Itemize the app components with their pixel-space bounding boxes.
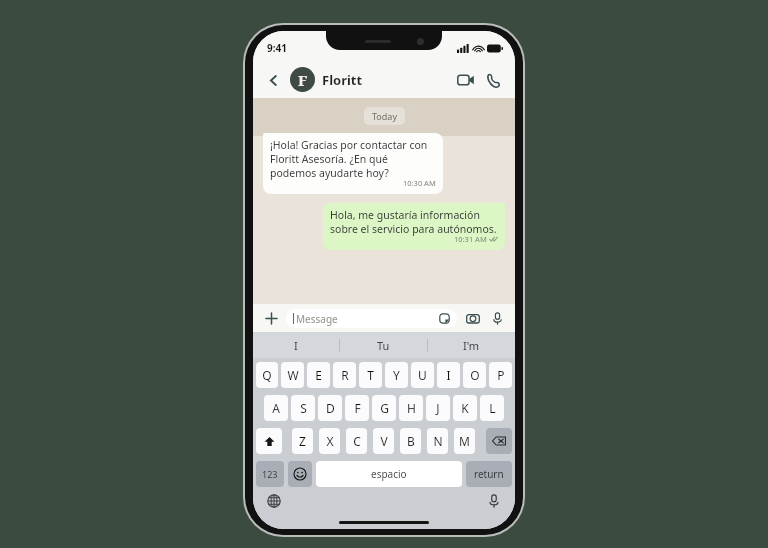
button[interactable]: F (290, 67, 363, 92)
button[interactable]: ¡Hola! Gracias por contactar con Floritt… (263, 133, 443, 194)
button[interactable]: Change keyboard (263, 490, 285, 512)
staticText: J (436, 400, 440, 416)
button[interactable]: Emoji (288, 461, 312, 487)
staticText: Message (296, 312, 338, 326)
button[interactable]: F (345, 395, 369, 421)
staticText: Z (299, 433, 306, 449)
staticText: D (326, 400, 335, 416)
staticText: I'm (463, 338, 480, 353)
button[interactable]: I'm (428, 332, 515, 358)
staticText: 10:31 AM (454, 234, 487, 244)
staticText: F (354, 400, 361, 416)
button[interactable]: I (437, 362, 460, 388)
button[interactable]: Dictation (483, 490, 505, 512)
button[interactable]: Y (385, 362, 408, 388)
staticText: G (380, 400, 389, 416)
button[interactable]: return (466, 461, 512, 487)
button[interactable]: Hola, me gustaría información sobre el s… (323, 203, 505, 250)
staticText: return (474, 467, 504, 481)
button[interactable]: Voice message (487, 308, 507, 328)
staticText: M (459, 433, 470, 449)
staticText: 9:41 (267, 41, 287, 55)
staticText: Y (393, 367, 400, 383)
staticText: H (407, 400, 416, 416)
staticText: I (446, 367, 451, 383)
button[interactable]: R (333, 362, 356, 388)
staticText: F (298, 70, 308, 90)
button[interactable]: espacio (316, 461, 462, 487)
button[interactable]: 123 (256, 461, 284, 487)
button[interactable]: Video call (452, 67, 478, 93)
button[interactable]: W (281, 362, 304, 388)
button[interactable]: I (253, 332, 339, 358)
button[interactable]: T (359, 362, 382, 388)
button[interactable]: P (489, 362, 512, 388)
button[interactable]: L (480, 395, 504, 421)
staticText: X (326, 433, 334, 449)
button[interactable]: A (264, 395, 288, 421)
staticText: Floritt (322, 71, 363, 89)
staticText: I (294, 338, 298, 353)
staticText: A (272, 400, 280, 416)
button[interactable]: Back (262, 69, 284, 91)
button[interactable]: J (426, 395, 450, 421)
button[interactable]: V (373, 428, 394, 454)
staticText: 10:30 AM (403, 178, 436, 188)
button[interactable]: Q (256, 362, 278, 388)
staticText: P (497, 367, 505, 383)
staticText: S (300, 400, 307, 416)
staticText: V (380, 433, 388, 449)
button[interactable]: Tu (340, 332, 427, 358)
button[interactable]: Message (286, 309, 457, 328)
button[interactable]: M (454, 428, 475, 454)
staticText: K (461, 400, 469, 416)
button[interactable]: B (400, 428, 421, 454)
button[interactable]: G (372, 395, 396, 421)
button[interactable]: Backspace (486, 428, 512, 454)
staticText: E (315, 367, 322, 383)
button[interactable]: Voice call (480, 67, 506, 93)
button[interactable]: N (427, 428, 448, 454)
staticText: T (367, 367, 374, 383)
staticText: B (407, 433, 415, 449)
staticText: ¡Hola! Gracias por contactar con Floritt… (270, 138, 436, 180)
button[interactable]: U (411, 362, 434, 388)
staticText: L (489, 400, 496, 416)
button[interactable]: Attach (261, 308, 281, 328)
button[interactable]: E (307, 362, 330, 388)
button[interactable]: Camera (463, 308, 483, 328)
button[interactable]: S (291, 395, 315, 421)
staticText: R (341, 367, 349, 383)
button[interactable]: K (453, 395, 477, 421)
staticText: 123 (262, 468, 278, 480)
button[interactable]: H (399, 395, 423, 421)
button[interactable]: C (346, 428, 367, 454)
staticText: O (470, 367, 480, 383)
staticText: U (418, 367, 427, 383)
button[interactable]: Z (292, 428, 313, 454)
staticText: Tu (377, 338, 390, 353)
staticText: C (353, 433, 361, 449)
staticText: W (287, 367, 299, 383)
button[interactable]: X (319, 428, 340, 454)
staticText: Today (372, 110, 397, 122)
staticText: Hola, me gustaría información sobre el s… (330, 208, 498, 236)
button[interactable]: D (318, 395, 342, 421)
button[interactable]: O (463, 362, 486, 388)
button[interactable]: Shift (256, 428, 282, 454)
staticText: espacio (371, 467, 407, 481)
staticText: N (433, 433, 443, 449)
staticText: Q (262, 367, 272, 383)
